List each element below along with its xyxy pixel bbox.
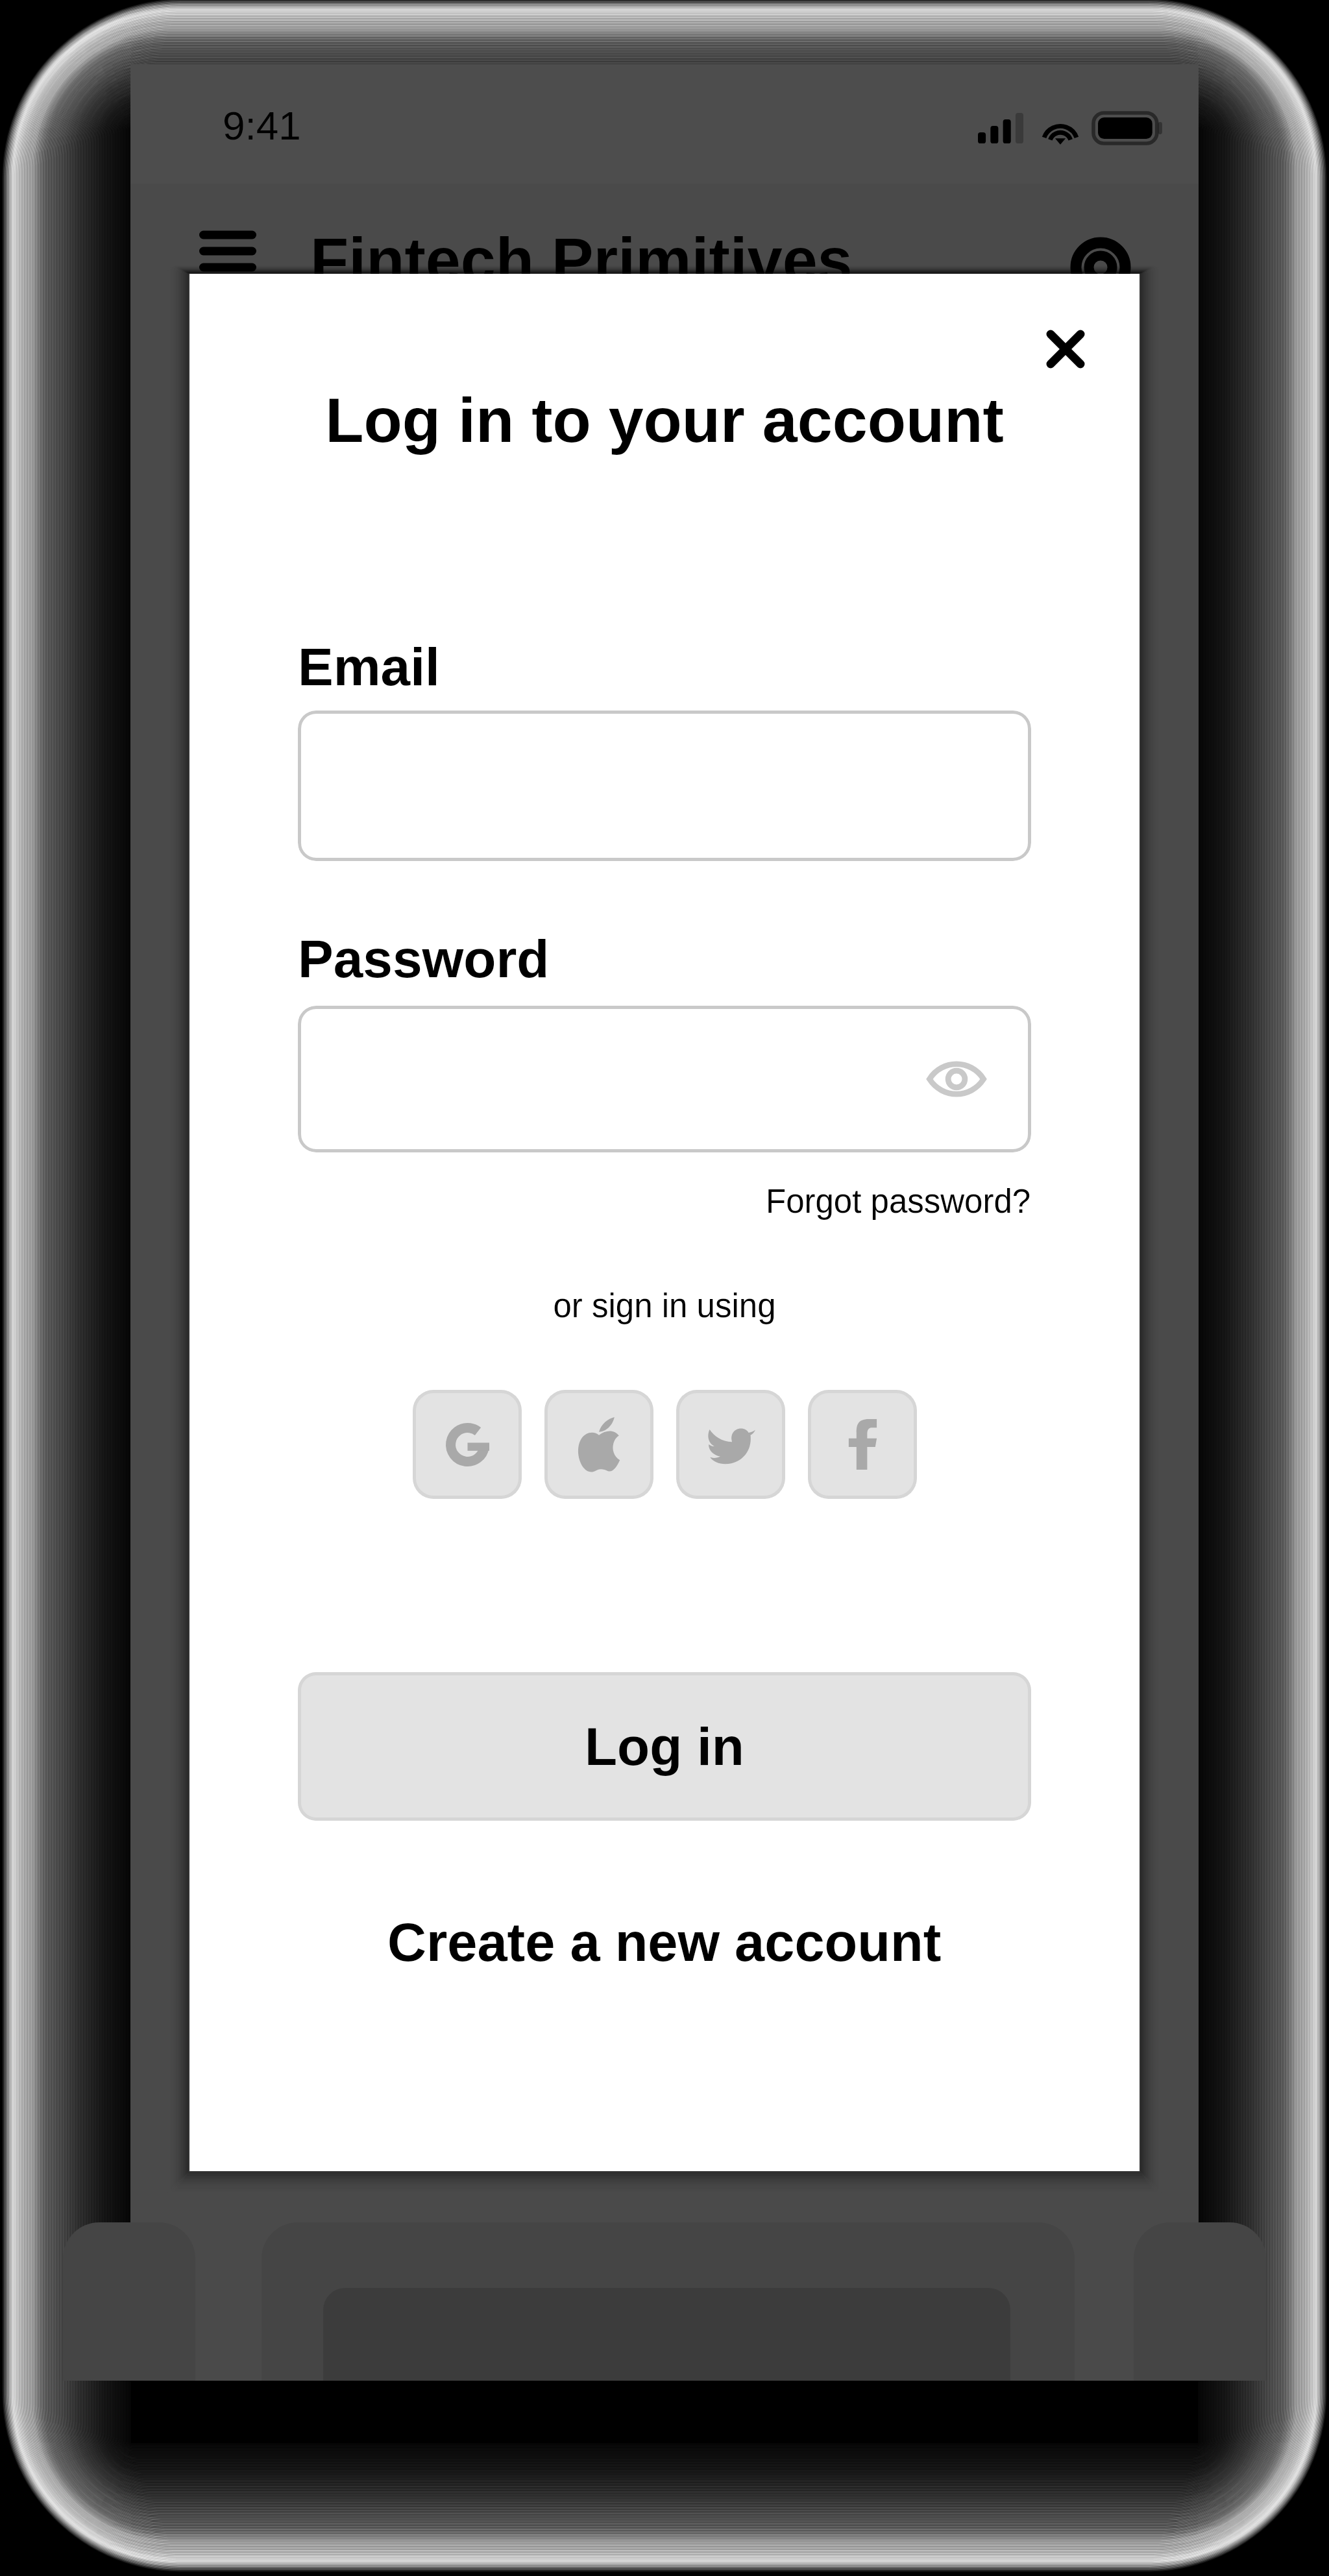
- staticText: Log in to your account: [189, 385, 1140, 455]
- button[interactable]: Log in: [298, 1672, 1031, 1821]
- staticText: 9:41: [223, 103, 301, 148]
- button[interactable]: Show password: [298, 1006, 1031, 1152]
- staticText: Fintech Primitives: [310, 225, 853, 295]
- button[interactable]: Sign in with Twitter: [676, 1390, 785, 1499]
- staticText: or sign in using: [189, 1287, 1140, 1324]
- staticText: Log in: [585, 1717, 744, 1777]
- button[interactable]: Forgot password?: [760, 1167, 1031, 1225]
- staticText: Create a new account: [387, 1912, 942, 1973]
- staticText: Password: [298, 929, 550, 989]
- button[interactable]: Show password: [912, 1035, 1001, 1123]
- button[interactable]: Sign in with Google: [413, 1390, 522, 1499]
- staticText: Email: [298, 637, 440, 697]
- staticText: Forgot password?: [766, 1183, 1031, 1220]
- button[interactable]: [298, 711, 1031, 861]
- button[interactable]: Account: [1060, 227, 1141, 308]
- button[interactable]: Close: [1023, 306, 1108, 391]
- button[interactable]: Create a new account: [189, 1893, 1140, 1991]
- button[interactable]: Sign in with Apple: [544, 1390, 653, 1499]
- button[interactable]: Sign in with Facebook: [808, 1390, 917, 1499]
- button[interactable]: Open navigation menu: [186, 210, 269, 293]
